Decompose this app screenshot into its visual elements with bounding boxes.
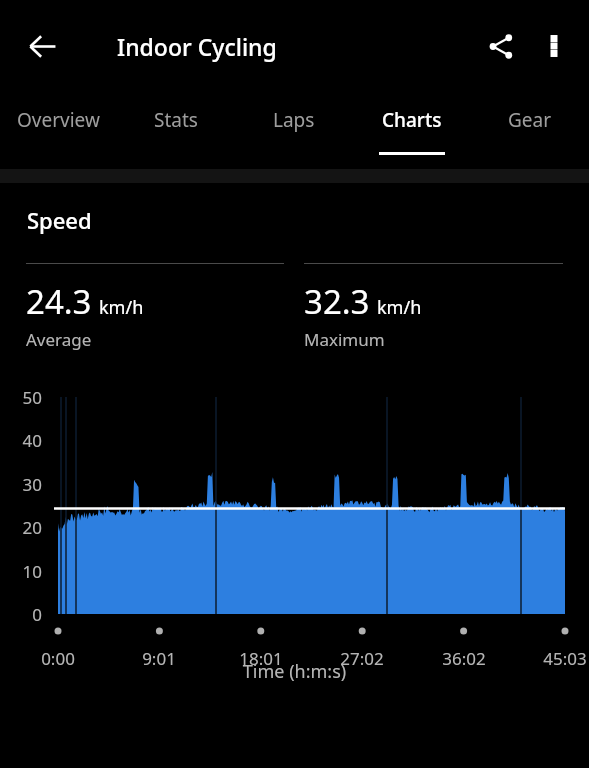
staticText: Speed: [27, 205, 92, 235]
button[interactable]: Stats: [117, 92, 235, 169]
staticText: 10: [0, 560, 42, 583]
button[interactable]: Gear: [471, 92, 589, 169]
staticText: 40: [0, 429, 42, 452]
staticText: km/h: [99, 295, 144, 320]
staticText: 9:01: [119, 647, 199, 670]
staticText: 18:01: [221, 647, 301, 670]
staticText: Overview: [17, 107, 100, 133]
button[interactable]: Overview: [0, 92, 117, 169]
button[interactable]: More options: [527, 19, 581, 73]
staticText: 30: [0, 473, 42, 496]
staticText: 0:00: [18, 647, 98, 670]
staticText: Maximum: [304, 328, 385, 351]
staticText: 27:02: [322, 647, 402, 670]
staticText: 36:02: [424, 647, 504, 670]
staticText: 32.3: [304, 279, 370, 324]
staticText: Average: [26, 328, 92, 351]
staticText: Charts: [382, 107, 442, 133]
button[interactable]: Laps: [235, 92, 353, 169]
staticText: Indoor Cycling: [117, 31, 277, 62]
button[interactable]: Share: [473, 19, 527, 73]
staticText: 24.3: [26, 279, 92, 324]
staticText: 45:03: [525, 647, 589, 670]
staticText: km/h: [377, 295, 422, 320]
staticText: 0: [0, 603, 42, 626]
staticText: Gear: [508, 107, 552, 133]
button[interactable]: Charts: [353, 92, 471, 169]
staticText: Stats: [154, 107, 198, 133]
button[interactable]: Back: [14, 18, 70, 74]
staticText: 20: [0, 516, 42, 539]
staticText: Time (h:m:s): [0, 659, 589, 684]
staticText: 50: [0, 386, 42, 409]
staticText: Laps: [273, 107, 315, 133]
